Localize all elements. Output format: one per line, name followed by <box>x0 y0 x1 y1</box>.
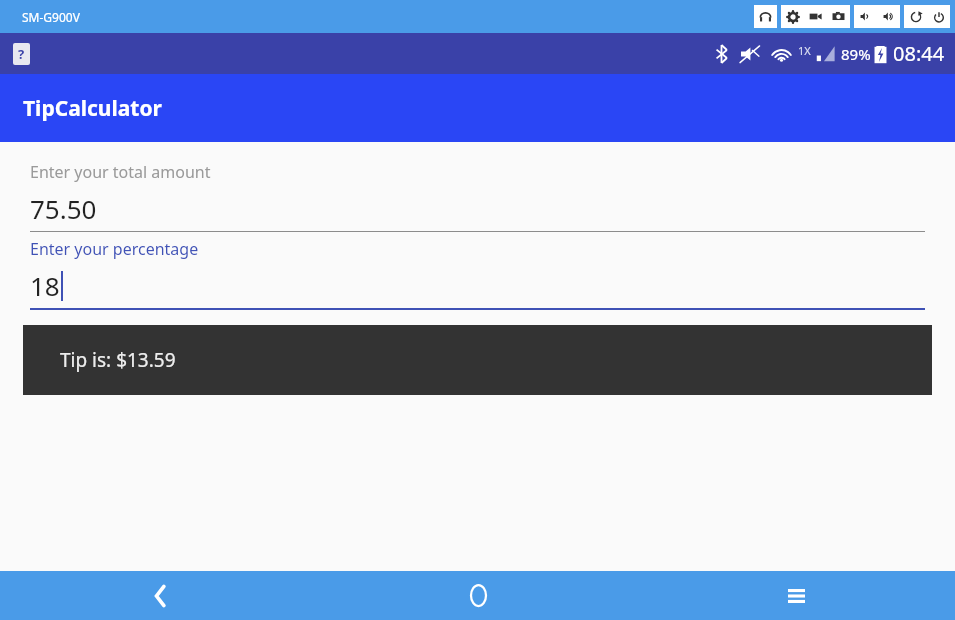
button[interactable]: Volume down <box>854 5 877 28</box>
button[interactable]: Record video <box>804 5 827 28</box>
staticText: 89% <box>841 44 871 64</box>
staticText: ? <box>18 45 25 63</box>
staticText: 18 <box>30 268 60 303</box>
button[interactable]: Menu <box>637 571 955 620</box>
button[interactable]: Volume up <box>877 5 900 28</box>
staticText: SM-G900V <box>22 9 80 25</box>
staticText: Tip is: $13.59 <box>60 347 176 373</box>
staticText: 75.50 <box>30 191 97 226</box>
staticText: 1X <box>798 43 811 58</box>
staticText: Enter your percentage <box>30 238 199 260</box>
button[interactable]: Tip is: $13.59 <box>23 325 932 395</box>
button[interactable]: Back <box>0 571 319 620</box>
button[interactable]: Home <box>319 571 637 620</box>
button[interactable]: Rotate <box>904 5 927 28</box>
staticText: Enter your total amount <box>30 161 211 183</box>
button[interactable]: Settings <box>781 5 804 28</box>
staticText: TipCalculator <box>23 94 162 123</box>
button[interactable]: Screenshot <box>827 5 850 28</box>
button[interactable]: Power <box>927 5 950 28</box>
staticText: 08:44 <box>893 40 945 67</box>
button[interactable]: Headset <box>754 5 777 28</box>
